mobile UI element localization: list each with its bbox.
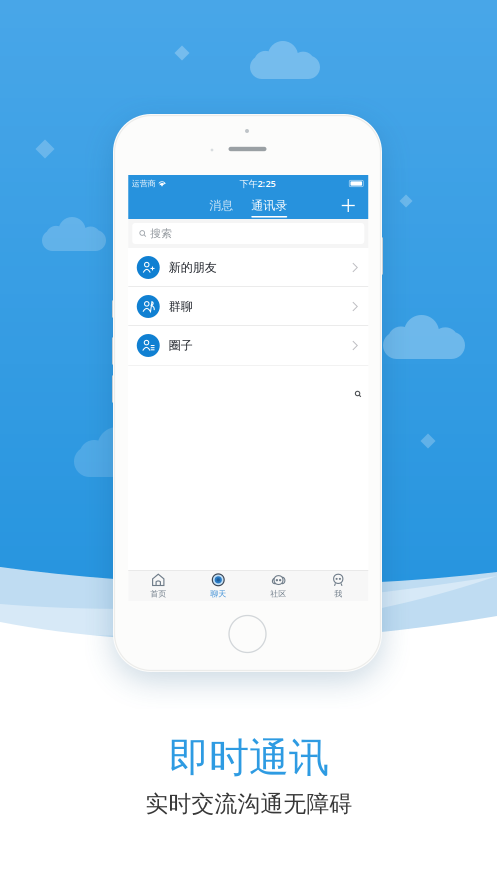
button[interactable]: 搜索: [128, 219, 368, 248]
staticText: 消息: [209, 198, 233, 213]
staticText: 我: [334, 589, 342, 599]
staticText: 即时通讯: [169, 733, 329, 782]
button[interactable]: 圈子: [128, 326, 368, 365]
staticText: 聊天: [210, 589, 226, 599]
staticText: 运营商: [132, 179, 156, 188]
staticText: 首页: [150, 589, 166, 599]
button[interactable]: 首页: [128, 571, 188, 601]
button[interactable]: 社区: [248, 571, 308, 601]
button[interactable]: 通讯录: [247, 192, 291, 219]
staticText: 新的朋友: [169, 260, 217, 275]
staticText: 圈子: [169, 338, 193, 353]
staticText: 搜索: [150, 227, 172, 240]
button[interactable]: 新建: [342, 192, 368, 219]
staticText: 通讯录: [251, 198, 287, 213]
button[interactable]: 群聊: [128, 287, 368, 326]
staticText: 实时交流沟通无障碍: [145, 790, 352, 818]
button[interactable]: 聊天: [188, 571, 248, 601]
staticText: 社区: [270, 589, 286, 599]
button[interactable]: 新的朋友: [128, 248, 368, 287]
button[interactable]: 消息: [201, 192, 241, 219]
button[interactable]: 我: [308, 571, 368, 601]
staticText: 下午2:25: [239, 177, 275, 190]
staticText: 群聊: [169, 299, 193, 314]
